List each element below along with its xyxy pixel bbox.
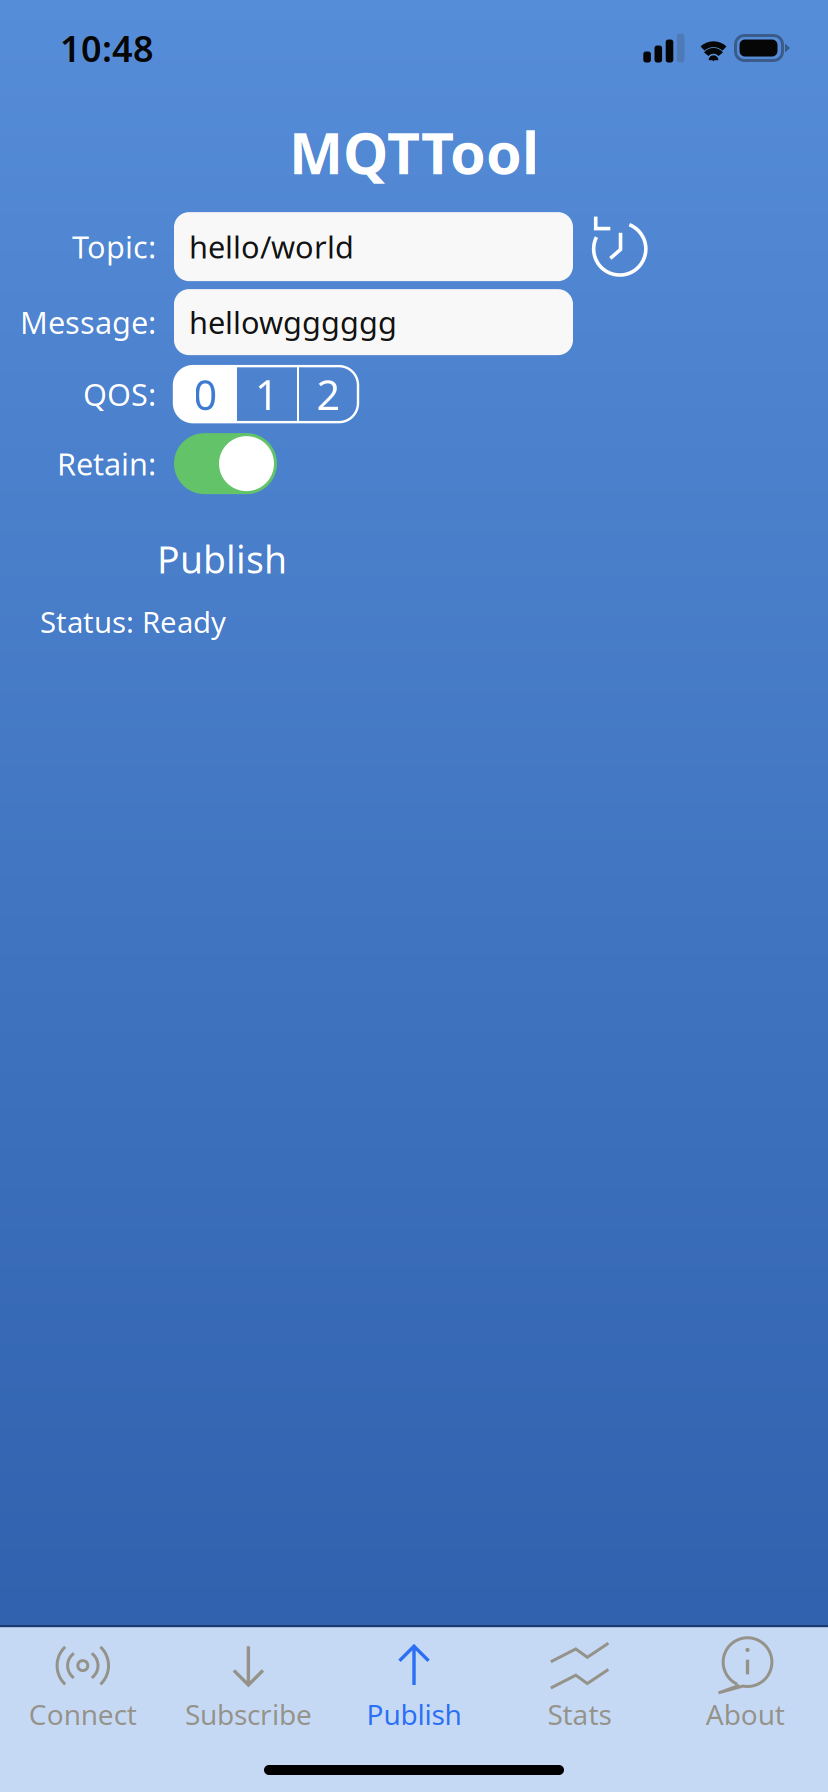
staticText: Status: Ready (40, 602, 226, 641)
staticText: 10:48 (60, 24, 154, 72)
button[interactable]: 1 (237, 366, 297, 422)
staticText: Message: (20, 302, 156, 342)
staticText: Retain: (57, 443, 156, 484)
staticText: Publish (157, 534, 287, 584)
button[interactable]: 2 (299, 366, 358, 422)
staticText: MQTTool (289, 114, 539, 190)
staticText: 2 (316, 367, 340, 422)
button[interactable]: Publish (107, 530, 337, 588)
button[interactable]: Publish (331, 1641, 497, 1733)
staticText: Connect (29, 1696, 137, 1733)
staticText: 0 (193, 367, 217, 422)
staticText: hellowgggggg (189, 302, 397, 342)
staticText: Publish (366, 1696, 461, 1733)
staticText: Subscribe (185, 1696, 312, 1733)
staticText: Topic: (72, 226, 156, 267)
staticText: hello/world (189, 226, 354, 267)
staticText: QOS: (83, 374, 156, 414)
staticText: Stats (548, 1696, 612, 1733)
staticText: About (706, 1696, 785, 1733)
button[interactable]: Stats (497, 1641, 662, 1733)
staticText: 1 (255, 367, 279, 422)
button[interactable]: History (573, 212, 663, 281)
button[interactable]: Connect (0, 1641, 166, 1733)
button[interactable]: 0 (174, 366, 237, 422)
button[interactable]: About (662, 1641, 828, 1733)
button[interactable]: Subscribe (166, 1641, 331, 1733)
button[interactable]: Retain (174, 433, 277, 494)
